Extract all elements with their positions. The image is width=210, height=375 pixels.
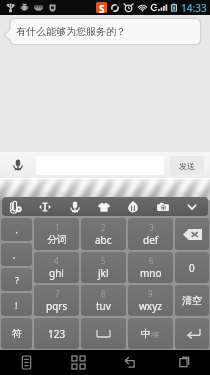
button[interactable]: 符 [1,318,32,349]
button[interactable]: Theme [92,197,116,216]
button[interactable]: Handwriting [4,197,28,216]
button[interactable]: 中 [128,318,173,349]
staticText: 123 [48,327,66,341]
staticText: 8 [101,288,106,299]
staticText: 发送 [179,161,195,171]
button[interactable]: Back [104,350,157,375]
button[interactable]: 4 [34,252,79,283]
staticText: jkl [98,266,109,280]
staticText: ghi [49,266,64,280]
button[interactable]: ENTER [175,318,209,349]
staticText: 分词 [47,233,67,246]
button[interactable]: Voice [63,197,87,216]
button[interactable]: 。 [1,243,32,266]
staticText: 14:33 [181,1,207,15]
button[interactable]: 1 [34,218,79,250]
button[interactable]: 2 [81,218,126,250]
staticText: /英 [151,331,160,339]
button[interactable]: 发送 [170,156,204,175]
staticText: 0 [189,261,195,275]
staticText: mno [140,266,162,280]
staticText: ! [15,299,18,311]
button[interactable]: 0 [175,252,209,283]
staticText: 有什么能够为您服务的？ [16,25,126,38]
staticText: 清空 [182,294,202,307]
button[interactable]: SPACE [81,318,126,349]
button[interactable]: Recents [157,350,210,375]
button[interactable]: Collapse keyboard [180,197,204,216]
button[interactable]: 9 [128,285,173,316]
staticText: 7 [55,288,60,299]
button[interactable]: 清空 [175,285,209,316]
staticText: 5 [101,255,106,266]
staticText: 1 [55,222,60,233]
button[interactable]: 5 [81,252,126,283]
button[interactable]: Move cursor [33,197,57,216]
button[interactable]: 有什么能够为您服务的？ [5,19,200,44]
button[interactable]: Camera [151,197,175,216]
button[interactable]: 3 [128,218,173,250]
button[interactable]: BACKSPACE [175,218,209,250]
staticText: 符 [12,327,22,340]
button[interactable]: 7 [34,285,79,316]
staticText: 9 [148,288,153,299]
button[interactable]: ! [1,293,32,316]
staticText: pqrs [46,299,68,313]
staticText: tuv [96,299,111,313]
staticText: 6 [149,255,154,266]
staticText: S [99,2,105,13]
staticText: wxyz [139,299,162,313]
staticText: 中 [141,327,151,340]
staticText: abc [95,233,112,247]
staticText: 。 [12,249,21,260]
staticText: ? [15,274,19,286]
staticText: 3 [149,222,154,233]
staticText: 4 [54,255,59,266]
staticText: ， [12,224,21,235]
button[interactable]: 123 [34,318,79,349]
button[interactable]: ， [1,218,32,241]
button[interactable]: ? [1,268,32,291]
staticText: 2 [101,222,106,233]
button[interactable]: Menu [0,350,52,375]
button[interactable]: 6 [128,252,173,283]
button[interactable]: 8 [81,285,126,316]
staticText: def [143,233,159,247]
button[interactable]: Emoji [121,197,145,216]
button[interactable]: Voice input [0,152,36,178]
button[interactable]: Apps [52,350,104,375]
